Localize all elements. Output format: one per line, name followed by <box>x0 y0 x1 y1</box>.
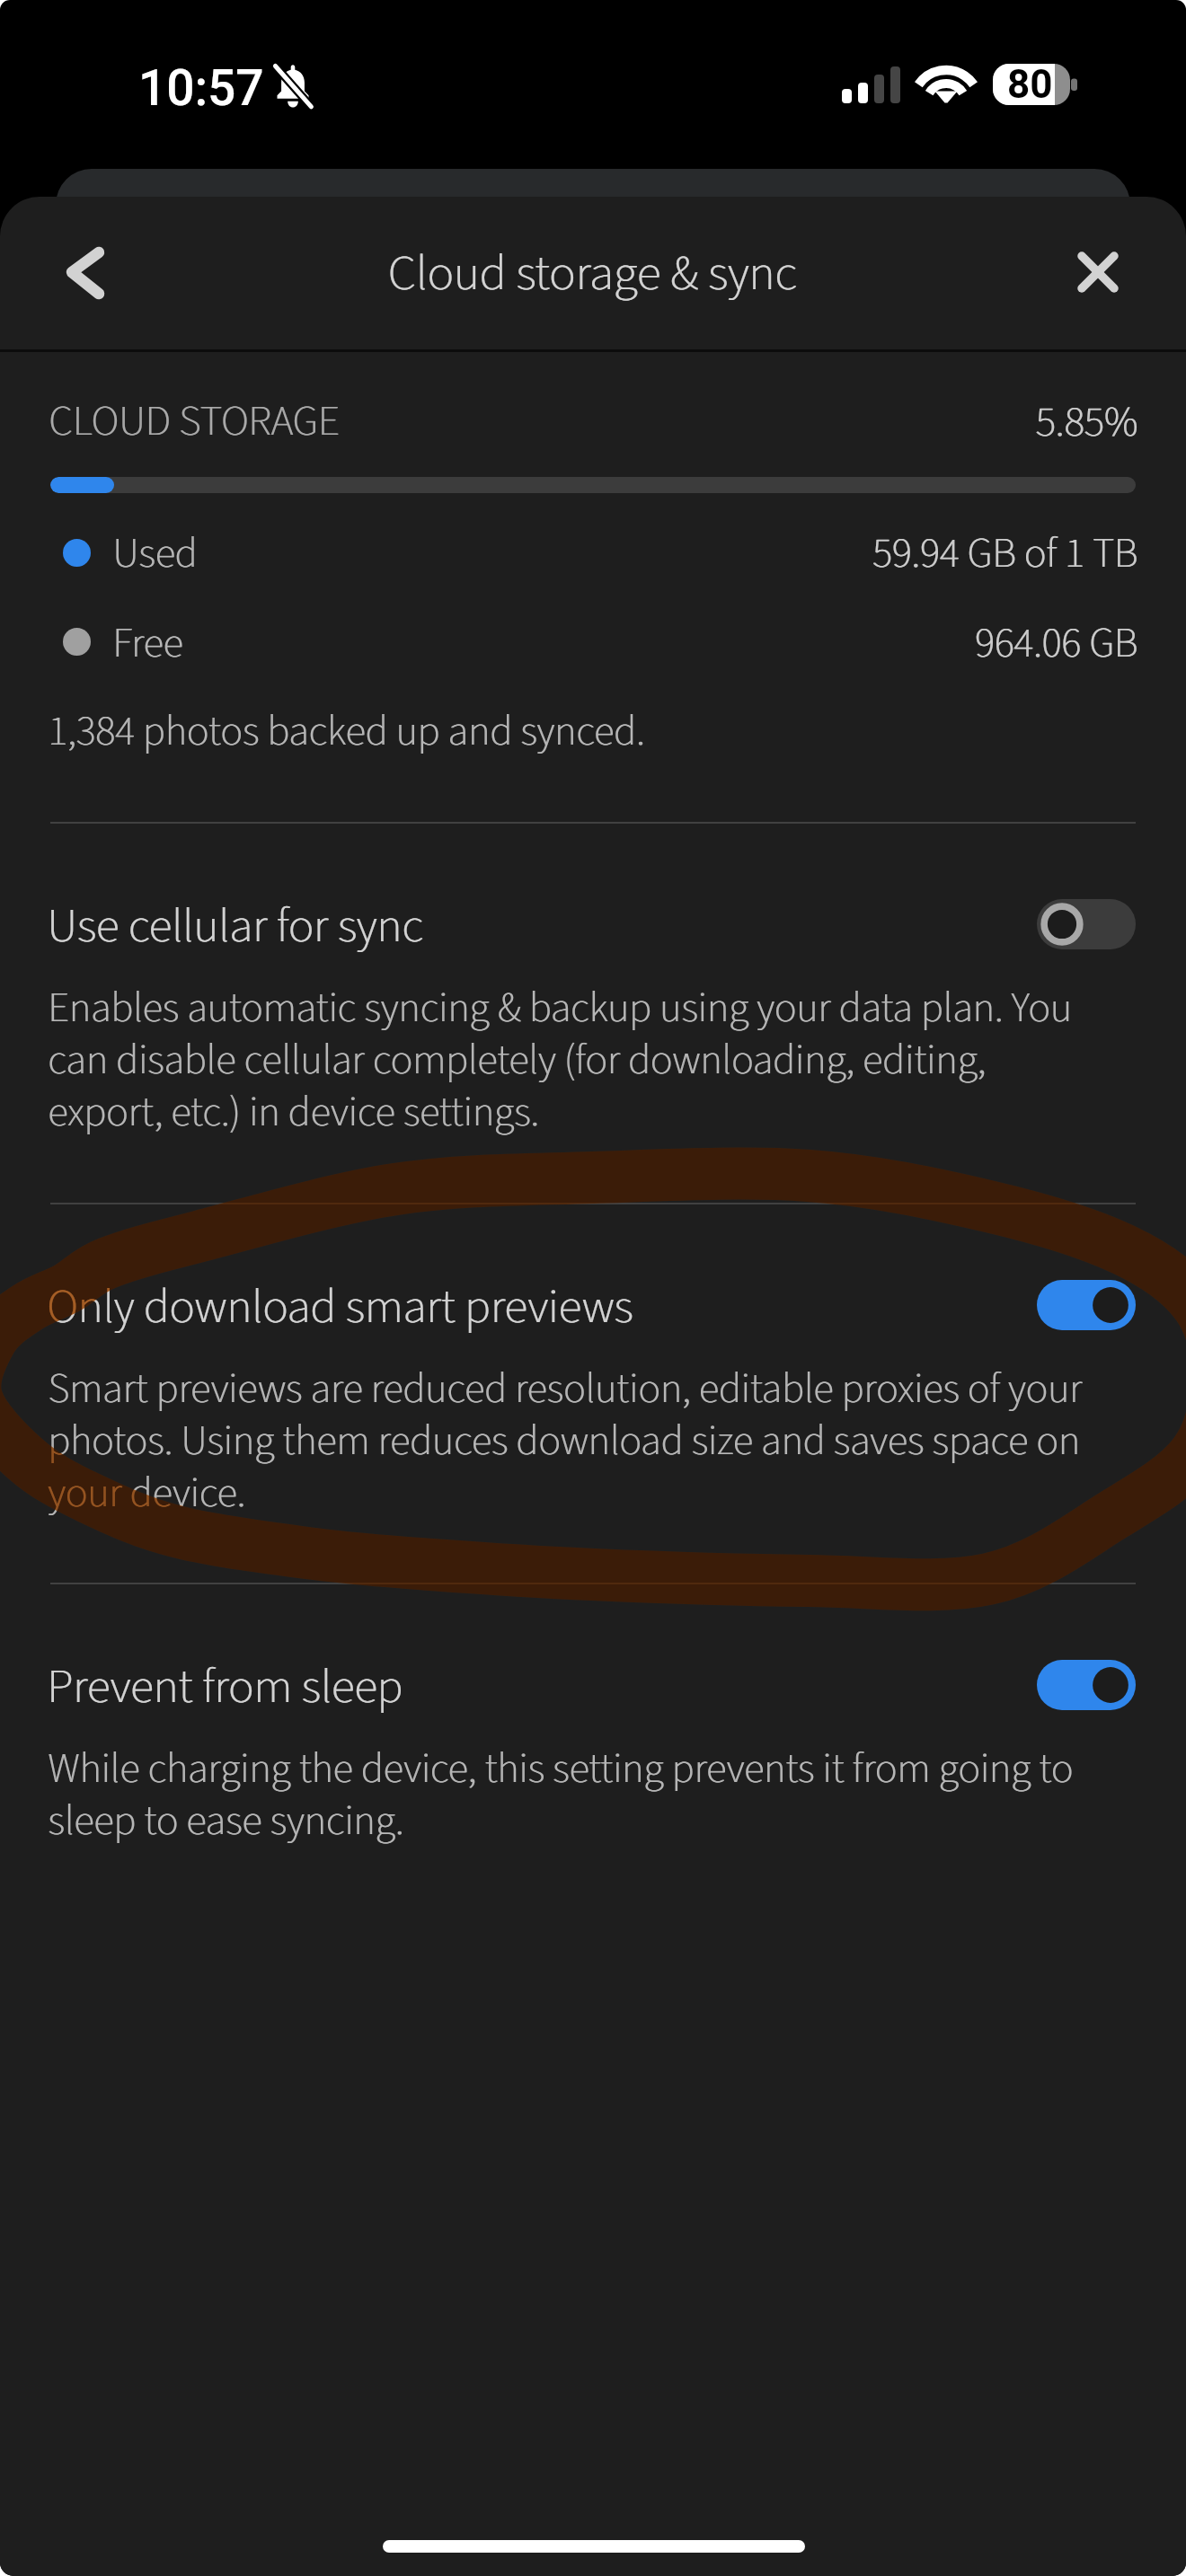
staticText: export, etc.) in device settings. <box>49 1083 540 1142</box>
staticText: Smart previews are reduced resolution, e… <box>48 1360 1082 1419</box>
button[interactable]: Use cellular for sync off <box>1037 899 1136 949</box>
staticText: Use cellular for sync <box>48 893 424 960</box>
staticText: Only download smart previews <box>47 1274 633 1341</box>
staticText: Free <box>113 614 184 674</box>
staticText: 5.85% <box>0 393 1138 453</box>
button[interactable]: Back <box>23 223 122 322</box>
staticText: 1,384 photos backed up and synced. <box>48 702 645 762</box>
staticText: Only download smart previews <box>48 1274 634 1341</box>
button[interactable]: Prevent from sleep on <box>1037 1660 1136 1710</box>
staticText: Used <box>113 525 199 584</box>
staticText: sleep to ease syncing. <box>48 1792 403 1851</box>
staticText: 10:57 <box>138 59 264 117</box>
staticText: can disable cellular completely (for dow… <box>48 1031 986 1090</box>
staticText: Free <box>112 614 183 674</box>
staticText: Prevent from sleep <box>48 1654 403 1721</box>
staticText: Enables automatic syncing & backup using… <box>49 979 1073 1038</box>
staticText: CLOUD STORAGE <box>49 392 341 452</box>
staticText: CLOUD STORAGE <box>49 392 340 452</box>
button[interactable] <box>0 1604 1186 1942</box>
staticText: Cloud storage & sync <box>0 239 1185 309</box>
staticText: export, etc.) in device settings. <box>48 1083 539 1142</box>
staticText: photos. Using them reduces download size… <box>49 1412 1081 1471</box>
button[interactable] <box>0 843 1186 1181</box>
staticText: While charging the device, this setting … <box>49 1740 1074 1799</box>
staticText: Smart previews are reduced resolution, e… <box>49 1360 1083 1419</box>
staticText: Cloud storage & sync <box>0 239 1186 309</box>
staticText: Use cellular for sync <box>47 893 423 960</box>
staticText: 5.85% <box>0 393 1137 453</box>
staticText: 1,384 photos backed up and synced. <box>49 702 646 762</box>
button[interactable]: Only download smart previews on <box>1037 1280 1136 1330</box>
staticText: While charging the device, this setting … <box>48 1740 1073 1799</box>
staticText: photos. Using them reduces download size… <box>48 1412 1080 1471</box>
staticText: sleep to ease syncing. <box>49 1792 404 1851</box>
staticText: Used <box>112 525 198 584</box>
staticText: your device. <box>49 1464 246 1523</box>
staticText: your device. <box>48 1464 245 1523</box>
button[interactable]: Close <box>1048 223 1146 322</box>
staticText: 59.94 GB of 1 TB <box>0 525 1137 584</box>
staticText: 80 <box>1007 61 1053 108</box>
staticText: Enables automatic syncing & backup using… <box>48 979 1072 1038</box>
staticText: Prevent from sleep <box>47 1654 403 1721</box>
staticText: 59.94 GB of 1 TB <box>0 525 1138 584</box>
staticText: can disable cellular completely (for dow… <box>49 1031 987 1090</box>
button[interactable] <box>0 1224 1186 1562</box>
staticText: 964.06 GB <box>0 614 1137 674</box>
staticText: 964.06 GB <box>0 614 1138 674</box>
